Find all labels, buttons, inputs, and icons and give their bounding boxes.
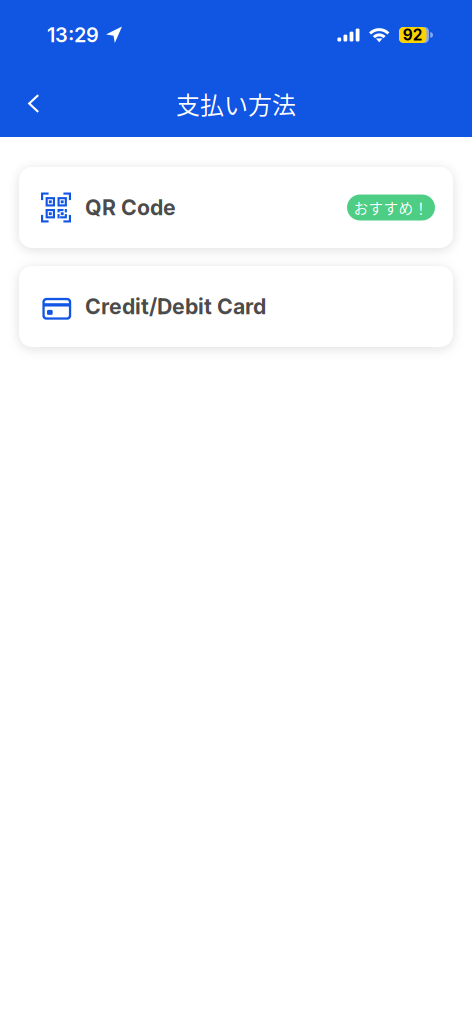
button[interactable]: Credit/Debit Card (19, 266, 453, 347)
staticText: 支払い方法 (176, 86, 296, 121)
staticText: おすすめ！ (353, 197, 428, 218)
staticText: Credit/Debit Card (85, 294, 266, 319)
staticText: QR Code (85, 195, 176, 220)
staticText: 92 (403, 26, 423, 44)
staticText: 13:29 (47, 23, 99, 47)
button[interactable]: QR Code (19, 167, 453, 248)
button[interactable]: Back (12, 81, 56, 125)
